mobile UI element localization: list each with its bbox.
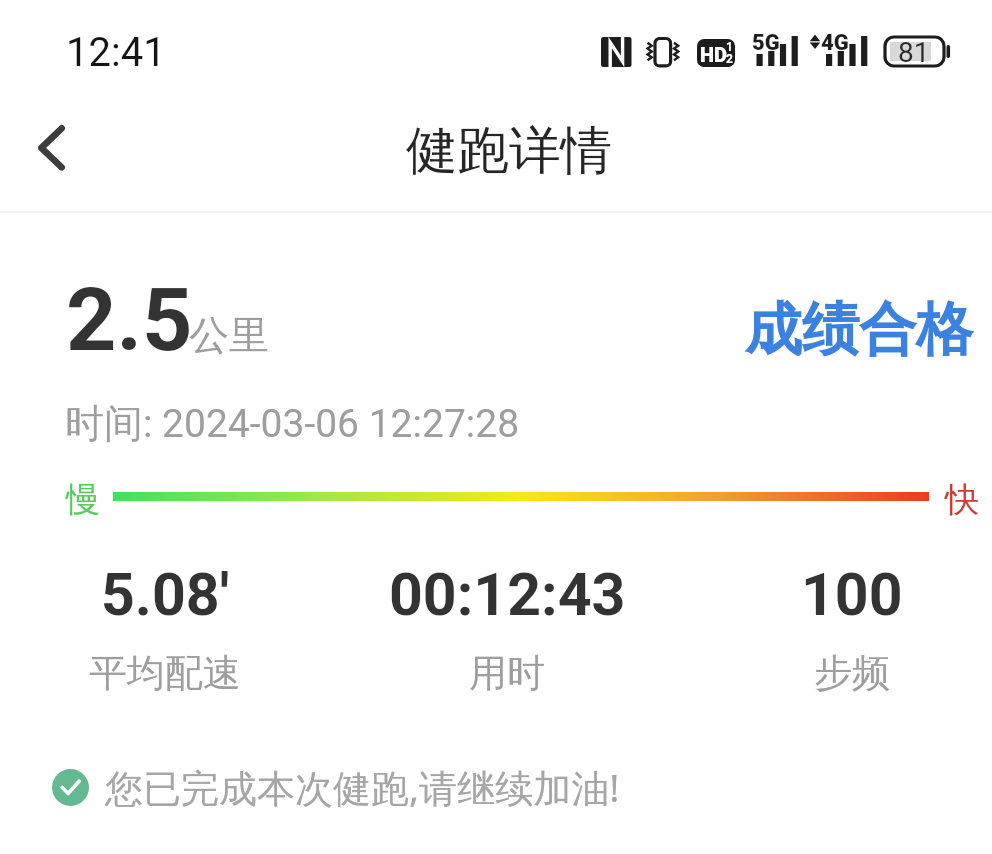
button[interactable]: 00:12:43 bbox=[347, 548, 667, 703]
staticText: 5.08' bbox=[101, 560, 230, 629]
staticText: 5G bbox=[752, 30, 780, 56]
button[interactable]: Back bbox=[9, 111, 93, 195]
staticText: 用时 bbox=[469, 649, 545, 697]
staticText: 4G bbox=[821, 30, 849, 56]
staticText: HD bbox=[700, 43, 727, 66]
button[interactable]: 100 bbox=[692, 548, 992, 703]
staticText: 2.5 bbox=[66, 268, 193, 371]
staticText: 健跑详情 bbox=[406, 118, 612, 183]
staticText: 慢 bbox=[66, 478, 100, 521]
staticText: 平均配速 bbox=[89, 649, 241, 697]
staticText: 步频 bbox=[814, 649, 890, 697]
staticText: 您已完成本次健跑,请继续加油! bbox=[105, 761, 620, 813]
staticText: 时间: 2024-03-06 12:27:28 bbox=[65, 399, 520, 448]
staticText: 成绩合格 bbox=[745, 294, 973, 366]
staticText: 公里 bbox=[189, 310, 269, 360]
staticText: 2 bbox=[726, 52, 733, 66]
button[interactable]: 5.08' bbox=[5, 548, 325, 703]
staticText: 81 bbox=[898, 36, 930, 69]
staticText: 00:12:43 bbox=[389, 560, 626, 629]
staticText: 1 bbox=[726, 40, 733, 54]
staticText: 100 bbox=[801, 560, 903, 629]
staticText: 12:41 bbox=[66, 29, 166, 76]
button[interactable]: 您已完成本次健跑,请继续加油! bbox=[52, 761, 620, 813]
staticText: 快 bbox=[945, 478, 979, 521]
